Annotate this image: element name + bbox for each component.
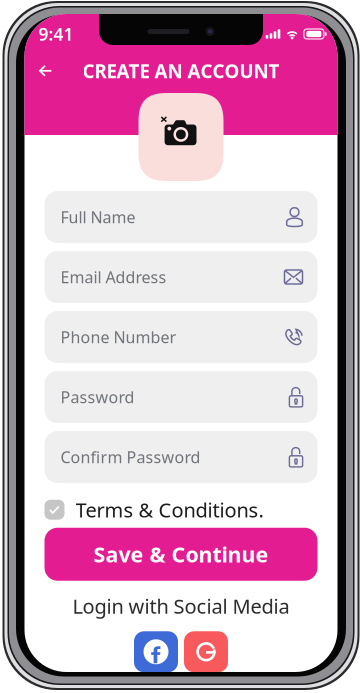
staticText: Email Address — [60, 266, 166, 288]
button[interactable]: Full Name — [44, 191, 317, 243]
button[interactable]: Add profile photo — [138, 93, 223, 181]
button[interactable]: Continue with Google — [184, 631, 228, 672]
staticText: Terms & Conditions. — [75, 496, 263, 523]
button[interactable]: Continue with Facebook — [134, 631, 178, 672]
button[interactable]: Email Address — [44, 251, 317, 303]
button[interactable]: Password — [44, 371, 317, 423]
staticText: Full Name — [60, 206, 135, 228]
button[interactable]: Confirm Password — [44, 431, 317, 483]
button[interactable]: Phone Number — [44, 311, 317, 363]
staticText: Phone Number — [60, 326, 176, 348]
staticText: Password — [60, 386, 134, 408]
button[interactable]: Terms & Conditions. — [44, 496, 263, 523]
staticText: Save & Continue — [93, 540, 268, 568]
staticText: Login with Social Media — [72, 593, 289, 619]
staticText: Confirm Password — [60, 446, 200, 468]
button[interactable]: Save & Continue — [44, 528, 317, 581]
staticText: CREATE AN ACCOUNT — [82, 59, 279, 83]
staticText: 9:41 — [38, 22, 73, 45]
button[interactable]: Back — [30, 57, 60, 85]
